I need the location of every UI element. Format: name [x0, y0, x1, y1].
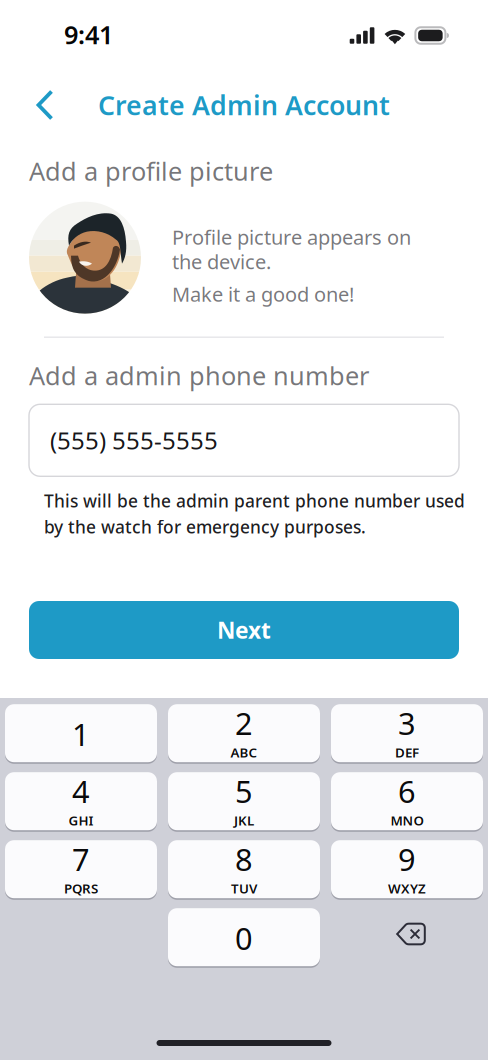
button[interactable]: 5: [168, 773, 320, 831]
staticText: 4: [72, 771, 90, 811]
button[interactable]: 4: [5, 773, 157, 831]
staticText: the device.: [172, 248, 271, 275]
staticText: PQRS: [64, 879, 98, 897]
staticText: 9: [398, 839, 416, 879]
button[interactable]: 1: [5, 705, 157, 763]
staticText: Make it a good one!: [172, 281, 354, 307]
staticText: by the watch for emergency purposes.: [44, 515, 366, 538]
button[interactable]: 3: [331, 705, 483, 763]
staticText: 9:41: [64, 18, 113, 51]
button[interactable]: Delete: [331, 909, 483, 967]
staticText: Profile picture appears on: [172, 224, 411, 250]
staticText: ABC: [230, 743, 257, 761]
staticText: 8: [235, 839, 253, 879]
staticText: 1: [72, 714, 90, 754]
staticText: Create Admin Account: [98, 87, 390, 123]
staticText: WXYZ: [388, 879, 426, 897]
staticText: MNO: [390, 811, 423, 829]
staticText: Add a profile picture: [29, 154, 273, 188]
staticText: 3: [398, 703, 416, 743]
button[interactable]: 8: [168, 841, 320, 899]
button[interactable]: 9: [331, 841, 483, 899]
button[interactable]: 0: [168, 909, 320, 967]
button[interactable]: 6: [331, 773, 483, 831]
staticText: This will be the admin parent phone numb…: [44, 489, 465, 512]
staticText: 5: [235, 771, 253, 811]
staticText: JKL: [234, 811, 254, 829]
staticText: 0: [235, 918, 253, 958]
staticText: (555) 555-5555: [50, 424, 218, 456]
button[interactable]: Next: [0, 601, 488, 659]
button[interactable]: (555) 555-5555: [0, 404, 488, 476]
staticText: Next: [217, 615, 271, 645]
staticText: DEF: [395, 743, 419, 761]
button[interactable]: 7: [5, 841, 157, 899]
staticText: TUV: [231, 879, 257, 897]
staticText: 2: [235, 703, 253, 743]
staticText: 7: [72, 839, 90, 879]
staticText: Add a admin phone number: [29, 359, 369, 392]
button[interactable]: Back: [0, 75, 76, 134]
staticText: GHI: [68, 811, 93, 829]
staticText: 6: [398, 771, 416, 811]
button[interactable]: 2: [168, 705, 320, 763]
